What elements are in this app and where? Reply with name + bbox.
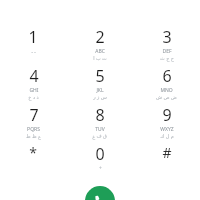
staticText: س ز ر: [93, 94, 107, 101]
staticText: *: [29, 143, 37, 162]
button[interactable]: 8: [66, 104, 133, 143]
staticText: 0: [95, 143, 105, 165]
staticText: +: [99, 165, 102, 172]
staticText: #: [162, 143, 172, 162]
staticText: م ل ك: [160, 133, 174, 140]
staticText: 6: [162, 65, 172, 87]
button[interactable]: 0: [66, 143, 133, 179]
button[interactable]: *: [0, 143, 66, 179]
staticText: JKL: [96, 87, 104, 94]
staticText: MNO: [160, 87, 173, 94]
staticText: ق ف غ: [92, 133, 107, 140]
staticText: 3: [162, 26, 172, 48]
staticText: 4: [29, 65, 39, 87]
button[interactable]: 3: [133, 26, 200, 65]
button[interactable]: #: [133, 143, 200, 179]
staticText: ذ د خ: [28, 94, 39, 101]
staticText: ح ج ث: [160, 55, 174, 62]
button[interactable]: 4: [0, 65, 66, 104]
staticText: ABC: [95, 48, 105, 55]
staticText: 2: [95, 26, 105, 48]
staticText: ض ص ش: [156, 94, 177, 101]
button[interactable]: 5: [66, 65, 133, 104]
button[interactable]: 2: [66, 26, 133, 65]
button[interactable]: Call: [85, 186, 115, 200]
staticText: GHI: [29, 87, 39, 94]
staticText: PQRS: [27, 126, 40, 133]
staticText: TUV: [95, 126, 105, 133]
staticText: ع ظ ط: [26, 133, 41, 140]
button[interactable]: 6: [133, 65, 200, 104]
staticText: ت ب ا: [93, 55, 107, 62]
staticText: ـ ـ: [31, 48, 36, 55]
staticText: 7: [29, 104, 39, 126]
staticText: DEF: [162, 48, 172, 55]
staticText: 9: [162, 104, 172, 126]
button[interactable]: 9: [133, 104, 200, 143]
button[interactable]: 1: [0, 26, 66, 65]
staticText: 1: [28, 26, 38, 48]
staticText: 5: [95, 65, 105, 87]
staticText: WXYZ: [160, 126, 174, 133]
button[interactable]: 7: [0, 104, 66, 143]
staticText: 8: [95, 104, 105, 126]
